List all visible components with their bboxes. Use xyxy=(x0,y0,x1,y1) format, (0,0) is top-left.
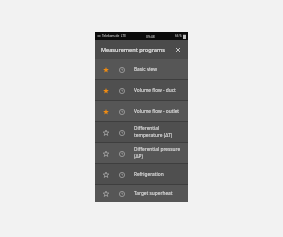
staticText: Telekom.de LTE xyxy=(102,34,126,38)
staticText: Basic view xyxy=(134,66,157,73)
staticText: Differential temperature (ΔT) xyxy=(134,125,184,139)
staticText: Volume flow - outlet xyxy=(134,108,180,115)
button[interactable]: Remove favourite xyxy=(95,101,188,121)
staticText: Volume flow - duct xyxy=(134,87,176,94)
staticText: Differential pressure (ΔP) xyxy=(134,146,184,160)
button[interactable]: Remove favourite xyxy=(100,85,111,96)
button[interactable]: Add favourite xyxy=(100,188,111,199)
button[interactable]: Add favourite xyxy=(95,185,188,202)
button[interactable]: Close xyxy=(173,45,183,55)
staticText: Target superheat xyxy=(134,190,173,197)
button[interactable]: Add favourite xyxy=(95,122,188,142)
staticText: Refrigeration xyxy=(134,171,164,178)
button[interactable]: Add favourite xyxy=(95,164,188,184)
button[interactable]: Add favourite xyxy=(95,143,188,163)
button[interactable]: Remove favourite xyxy=(95,80,188,100)
staticText: 66 % xyxy=(175,34,182,38)
button[interactable]: Add favourite xyxy=(100,148,111,159)
button[interactable]: Add favourite xyxy=(100,169,111,180)
staticText: Measurement programs xyxy=(101,46,173,54)
button[interactable]: Remove favourite xyxy=(95,59,188,79)
button[interactable]: Add favourite xyxy=(100,127,111,138)
button[interactable]: Remove favourite xyxy=(100,106,111,117)
staticText: 09:48 xyxy=(146,34,155,39)
button[interactable]: Remove favourite xyxy=(100,64,111,75)
